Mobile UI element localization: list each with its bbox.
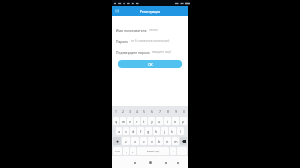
staticText: 7 [159,109,161,114]
button[interactable]: 5 [141,106,147,116]
button[interactable]: r [134,117,140,125]
button[interactable]: u [156,117,163,125]
button[interactable]: 3 [127,106,133,116]
staticText: 2 [122,109,124,114]
staticText: от 6 символов латиницей [131,39,170,43]
button[interactable]: Navigate up [113,7,121,15]
button[interactable]: 8 [164,106,171,116]
button[interactable]: p [180,117,187,125]
staticText: n [166,139,169,144]
staticText: h [155,129,158,134]
button[interactable]: l [177,127,184,135]
staticText: 0 [183,109,185,114]
button[interactable]: q [113,117,119,125]
staticText: ОК [148,62,153,67]
button[interactable]: b [156,137,163,145]
staticText: z [125,139,127,144]
staticText: u [158,119,161,124]
staticText: 4 [136,109,138,114]
button[interactable]: x [131,137,139,145]
button[interactable]: w [120,117,126,125]
button[interactable]: . [170,147,176,155]
staticText: , [126,149,127,153]
button[interactable]: i [164,117,171,125]
button[interactable]: 2 [120,106,126,116]
button[interactable]: 6 [148,106,155,116]
button[interactable]: a [116,127,122,135]
staticText: ^ [132,150,134,153]
staticText: c [143,139,145,144]
staticText: 9 [175,109,177,114]
staticText: d [132,129,135,134]
staticText: 5 [143,109,145,114]
button[interactable]: d [130,127,136,135]
button[interactable]: 4 [134,106,140,116]
button[interactable]: ОК [118,60,182,68]
button[interactable]: Back [131,159,138,166]
button[interactable]: j [161,127,168,135]
button[interactable]: s [123,127,129,135]
button[interactable]: t [141,117,147,125]
staticText: Пароль [116,39,129,43]
button[interactable]: ?123 [113,147,122,155]
staticText: Регистрация [140,9,161,13]
staticText: ?123 [115,150,120,153]
button[interactable]: Home [147,159,154,166]
staticText: g [147,129,150,134]
staticText: v [151,139,153,144]
button[interactable]: English (UK) [137,147,169,155]
staticText: k [171,129,174,134]
staticText: . [173,149,174,153]
button[interactable]: g [145,127,152,135]
button[interactable]: Menu [174,159,181,166]
button[interactable]: 1 [113,106,119,116]
button[interactable]: 9 [172,106,179,116]
button[interactable]: m [172,137,179,145]
button[interactable]: f [137,127,144,135]
button[interactable]: Emoji [123,147,129,155]
button[interactable]: v [148,137,155,145]
staticText: m [174,139,178,144]
button[interactable]: e [127,117,133,125]
button[interactable]: k [169,127,176,135]
staticText: 3 [129,109,131,114]
staticText: s [125,129,127,134]
staticText: t [143,119,145,124]
staticText: f [140,129,142,134]
staticText: Подтвердите пароль [116,50,150,54]
button[interactable]: 0 [180,106,187,116]
staticText: i [167,119,168,124]
staticText: English (UK) [147,150,160,153]
staticText: a [118,129,121,134]
button[interactable]: Shift [113,137,121,145]
staticText: 1 [115,109,117,114]
staticText: p [182,119,185,124]
staticText: 8 [167,109,169,114]
button[interactable]: Settings [130,147,136,155]
button[interactable]: c [140,137,147,145]
staticText: o [174,119,177,124]
staticText: e [129,119,132,124]
staticText: b [158,139,161,144]
button[interactable]: Имя пользователя [112,24,188,35]
staticText: r [136,119,138,124]
button[interactable]: h [153,127,160,135]
button[interactable]: Пароль [112,35,188,46]
staticText: w [122,119,125,124]
staticText: j [164,129,165,134]
staticText: y [151,119,153,124]
button[interactable]: z [122,137,130,145]
staticText: Имя пользователя [116,28,147,32]
staticText: логин [149,28,158,32]
button[interactable]: n [164,137,171,145]
button[interactable]: Recents [162,159,169,166]
button[interactable]: 7 [156,106,163,116]
staticText: 6 [151,109,153,114]
button[interactable]: Backspace [180,137,187,145]
staticText: l [180,129,181,134]
staticText: введите ещё [152,50,172,54]
button[interactable]: o [172,117,179,125]
button[interactable]: Подтвердите пароль [112,46,188,57]
button[interactable]: y [148,117,155,125]
